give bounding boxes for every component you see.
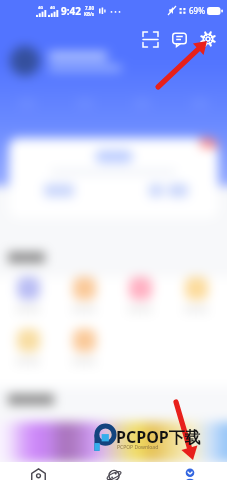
staticText: 9:42 bbox=[61, 4, 81, 18]
button[interactable]: Messages bbox=[166, 26, 192, 52]
staticText: 69% bbox=[189, 5, 205, 16]
button[interactable]: Settings bbox=[195, 26, 221, 52]
button[interactable]: Scan bbox=[137, 26, 163, 52]
staticText: KB/s bbox=[84, 11, 95, 17]
staticText: 4G bbox=[50, 5, 56, 10]
button[interactable]: Home bbox=[0, 462, 76, 480]
staticText: 7.80 bbox=[85, 5, 94, 11]
staticText: PCPOP Download bbox=[117, 444, 159, 451]
button[interactable]: Profile bbox=[152, 462, 227, 480]
button[interactable]: Explore bbox=[76, 462, 152, 480]
staticText: 4G bbox=[38, 5, 44, 10]
staticText: PCPOP下载 bbox=[116, 426, 201, 448]
